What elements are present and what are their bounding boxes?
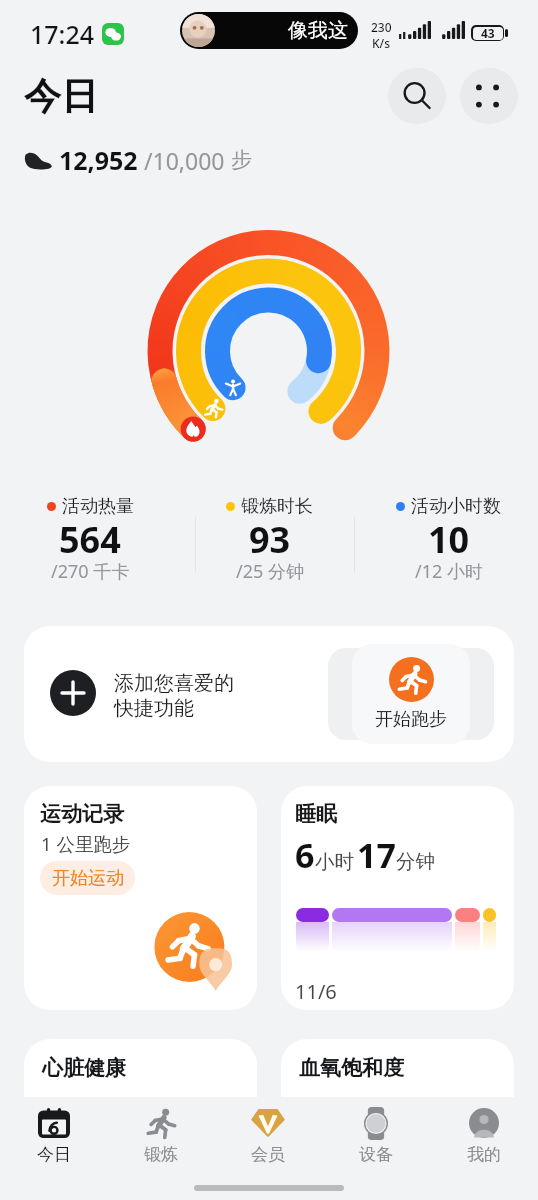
staticText: 今日 [37, 1144, 71, 1165]
button[interactable]: 我的 [430, 1097, 538, 1177]
staticText: 设备 [359, 1144, 393, 1165]
staticText: 运动记录 [40, 801, 124, 827]
staticText: /270 千卡 [51, 559, 130, 584]
staticText: 10 [428, 515, 470, 564]
staticText: /25 分钟 [236, 559, 304, 584]
staticText: 锻炼时长 [241, 495, 313, 518]
staticText: 步 [231, 147, 252, 173]
staticText: /12 小时 [415, 559, 483, 584]
staticText: 会员 [251, 1144, 285, 1165]
staticText: 开始跑步 [375, 708, 447, 731]
staticText: K/s [372, 35, 391, 51]
button[interactable]: 睡眠 [281, 786, 514, 1010]
staticText: 开始运动 [52, 867, 124, 890]
staticText: 分钟 [396, 849, 435, 874]
button[interactable]: 开始跑步 [352, 644, 470, 744]
staticText: 添加您喜爱的 [114, 671, 234, 696]
staticText: 11/6 [295, 978, 337, 1005]
button[interactable]: 运动记录 [24, 786, 257, 1010]
staticText: 血氧饱和度 [299, 1055, 404, 1081]
staticText: 今日 [24, 73, 98, 120]
staticText: 像我这 [288, 18, 348, 43]
button[interactable]: 锻炼 [107, 1097, 214, 1177]
staticText: 心脏健康 [42, 1055, 126, 1081]
staticText: /10,000 [144, 145, 225, 176]
button[interactable]: 锻炼时长 [180, 495, 359, 615]
staticText: 17 [357, 832, 396, 878]
staticText: 6 [295, 832, 315, 878]
staticText: 活动小时数 [411, 495, 501, 518]
button[interactable]: 活动热量 [0, 495, 180, 615]
staticText: 睡眠 [295, 801, 337, 827]
button[interactable]: More options [460, 68, 518, 124]
button[interactable]: 活动小时数 [359, 495, 538, 615]
button[interactable]: 会员 [214, 1097, 322, 1177]
button[interactable]: 血氧饱和度 [281, 1039, 514, 1099]
staticText: 564 [59, 515, 121, 564]
staticText: 43 [481, 25, 495, 41]
button[interactable]: 设备 [322, 1097, 430, 1177]
staticText: 活动热量 [62, 495, 134, 518]
staticText: 我的 [467, 1144, 501, 1165]
button[interactable]: 今日 [0, 1097, 107, 1177]
staticText: 93 [249, 515, 291, 564]
staticText: 小时 [315, 849, 354, 874]
staticText: 1 公里跑步 [41, 831, 131, 856]
button[interactable]: 心脏健康 [24, 1039, 257, 1099]
staticText: 12,952 [59, 143, 138, 177]
staticText: 17:24 [30, 17, 95, 51]
staticText: 230 [371, 19, 392, 35]
button[interactable]: 添加您喜爱的 [24, 626, 514, 762]
button[interactable]: Search [388, 68, 446, 124]
staticText: 锻炼 [144, 1144, 178, 1165]
button[interactable]: 开始运动 [40, 861, 135, 895]
staticText: 快捷功能 [114, 696, 194, 721]
